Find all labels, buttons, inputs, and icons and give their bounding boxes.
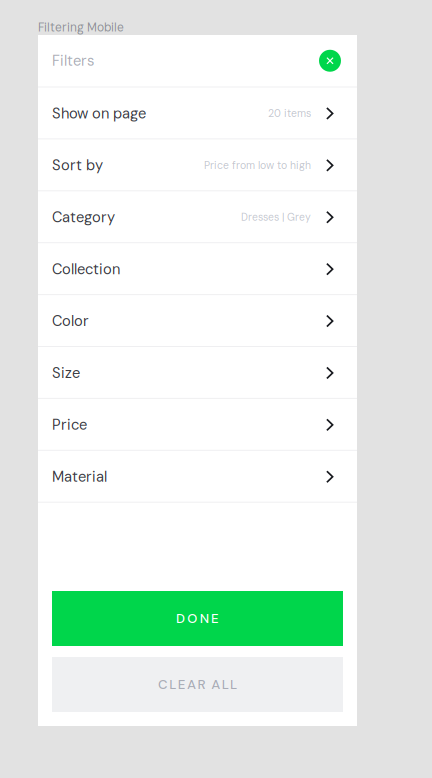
staticText: Material bbox=[52, 467, 107, 486]
button[interactable]: Size bbox=[38, 347, 357, 399]
staticText: R bbox=[197, 676, 205, 693]
staticText: A bbox=[211, 676, 220, 693]
staticText: Show on page bbox=[52, 104, 146, 123]
staticText: Dresses | Grey bbox=[241, 210, 311, 224]
staticText: 20 items bbox=[268, 107, 311, 120]
button[interactable]: Close filters bbox=[319, 50, 341, 72]
button[interactable]: Price bbox=[38, 399, 357, 451]
staticText: Price bbox=[52, 415, 87, 434]
button[interactable]: Color bbox=[38, 295, 357, 347]
staticText: E bbox=[178, 676, 186, 693]
staticText: L bbox=[222, 676, 229, 693]
staticText: Size bbox=[52, 363, 80, 382]
button[interactable]: D bbox=[52, 591, 343, 646]
staticText: Price from low to high bbox=[204, 159, 311, 172]
staticText: Collection bbox=[52, 260, 120, 279]
staticText: L bbox=[230, 676, 237, 693]
staticText: Color bbox=[52, 311, 89, 331]
staticText: Sort by bbox=[52, 156, 103, 175]
staticText: D bbox=[176, 610, 185, 627]
button[interactable]: Sort by bbox=[38, 139, 357, 191]
button[interactable]: C bbox=[52, 657, 343, 712]
staticText: C bbox=[158, 676, 168, 693]
staticText: L bbox=[169, 676, 176, 693]
staticText: N bbox=[200, 610, 209, 627]
staticText: O bbox=[187, 610, 197, 627]
staticText: Filtering Mobile bbox=[38, 20, 124, 35]
button[interactable]: Category bbox=[38, 191, 357, 243]
staticText: Filters bbox=[52, 51, 94, 70]
staticText: E bbox=[211, 610, 219, 627]
button[interactable]: Show on page bbox=[38, 87, 357, 139]
button[interactable]: Collection bbox=[38, 243, 357, 295]
staticText: A bbox=[187, 676, 196, 693]
staticText: Category bbox=[52, 208, 115, 227]
button[interactable]: Material bbox=[38, 451, 357, 503]
